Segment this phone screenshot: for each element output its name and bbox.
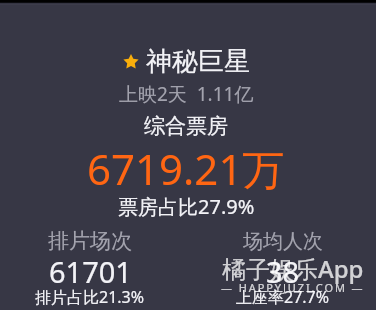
staticText: 6719.21万 <box>87 140 285 197</box>
staticText: 38 <box>266 252 300 291</box>
staticText: 上座率27.7% <box>236 286 330 308</box>
staticText: 场均人次 <box>243 229 323 254</box>
staticText: 排片场次 <box>48 228 132 254</box>
staticText: 61701 <box>49 252 132 291</box>
staticText: — HAPPYJUZI.COM — <box>221 280 365 295</box>
staticText: 排片占比21.3% <box>35 286 145 308</box>
staticText: 票房占比27.9% <box>118 193 255 220</box>
staticText: 上映2天 1.11亿 <box>119 81 254 107</box>
staticText: 神秘巨星 <box>146 45 250 78</box>
staticText: 综合票房 <box>144 113 228 139</box>
staticText: 橘子娱乐App <box>222 252 364 285</box>
